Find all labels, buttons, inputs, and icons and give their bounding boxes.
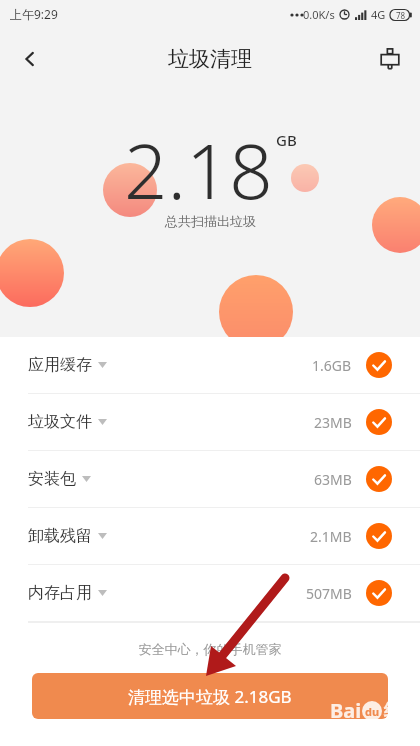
staticText: GB (276, 130, 297, 150)
button[interactable]: Selected 应用缓存 (366, 352, 392, 378)
staticText: 安装包 (28, 469, 76, 489)
staticText: 垃圾文件 (28, 412, 92, 432)
button[interactable]: 卸载残留 (0, 508, 420, 565)
staticText: 2.18 (124, 118, 273, 222)
button[interactable]: 清理选中垃圾 2.18GB (32, 673, 388, 719)
button[interactable]: Selected 安装包 (366, 466, 392, 492)
staticText: 63MB (314, 470, 352, 489)
staticText: 内存占用 (28, 583, 92, 603)
staticText: 1.6GB (312, 356, 352, 375)
staticText: du (365, 704, 380, 719)
button[interactable]: Back (8, 37, 52, 81)
button[interactable]: Selected 内存占用 (366, 580, 392, 606)
staticText: 4G (371, 7, 386, 22)
staticText: 上午9:29 (10, 6, 58, 22)
staticText: 23MB (314, 413, 352, 432)
staticText: 清理选中垃圾 2.18GB (128, 685, 292, 708)
staticText: Bai (330, 697, 362, 724)
staticText: 垃圾清理 (168, 46, 252, 72)
staticText: 卸载残留 (28, 526, 92, 546)
button[interactable]: 安装包 (0, 451, 420, 508)
button[interactable]: Selected 垃圾文件 (366, 409, 392, 435)
button[interactable]: Selected 卸载残留 (366, 523, 392, 549)
staticText: 总共扫描出垃圾 (165, 213, 256, 229)
staticText: 经验 (384, 700, 418, 721)
staticText: 78 (396, 10, 406, 21)
staticText: 0.0K/s (303, 7, 335, 22)
button[interactable]: 内存占用 (0, 565, 420, 622)
staticText: 2.1MB (310, 527, 352, 546)
button[interactable]: 垃圾文件 (0, 394, 420, 451)
staticText: 507MB (306, 584, 352, 603)
button[interactable]: Clean tools (368, 37, 412, 81)
staticText: 应用缓存 (28, 355, 92, 375)
button[interactable]: 应用缓存 (0, 337, 420, 394)
staticText: 安全中心，你的手机管家 (0, 641, 420, 657)
